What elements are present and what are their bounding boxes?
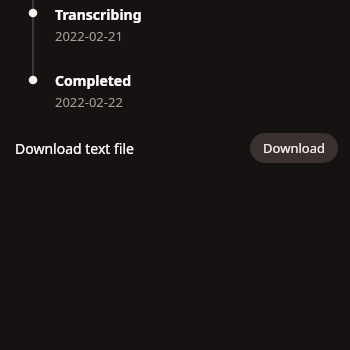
button[interactable]: Download <box>250 133 338 163</box>
staticText: Transcribing <box>55 5 142 24</box>
button[interactable]: Download text file <box>15 137 134 160</box>
staticText: Download text file <box>15 139 134 158</box>
staticText: 2022-02-21 <box>55 27 123 45</box>
staticText: Completed <box>55 71 132 90</box>
staticText: 2022-02-22 <box>55 93 123 111</box>
button[interactable]: Completed <box>55 71 140 113</box>
staticText: Download <box>263 139 325 157</box>
button[interactable]: Transcribing <box>55 5 150 47</box>
